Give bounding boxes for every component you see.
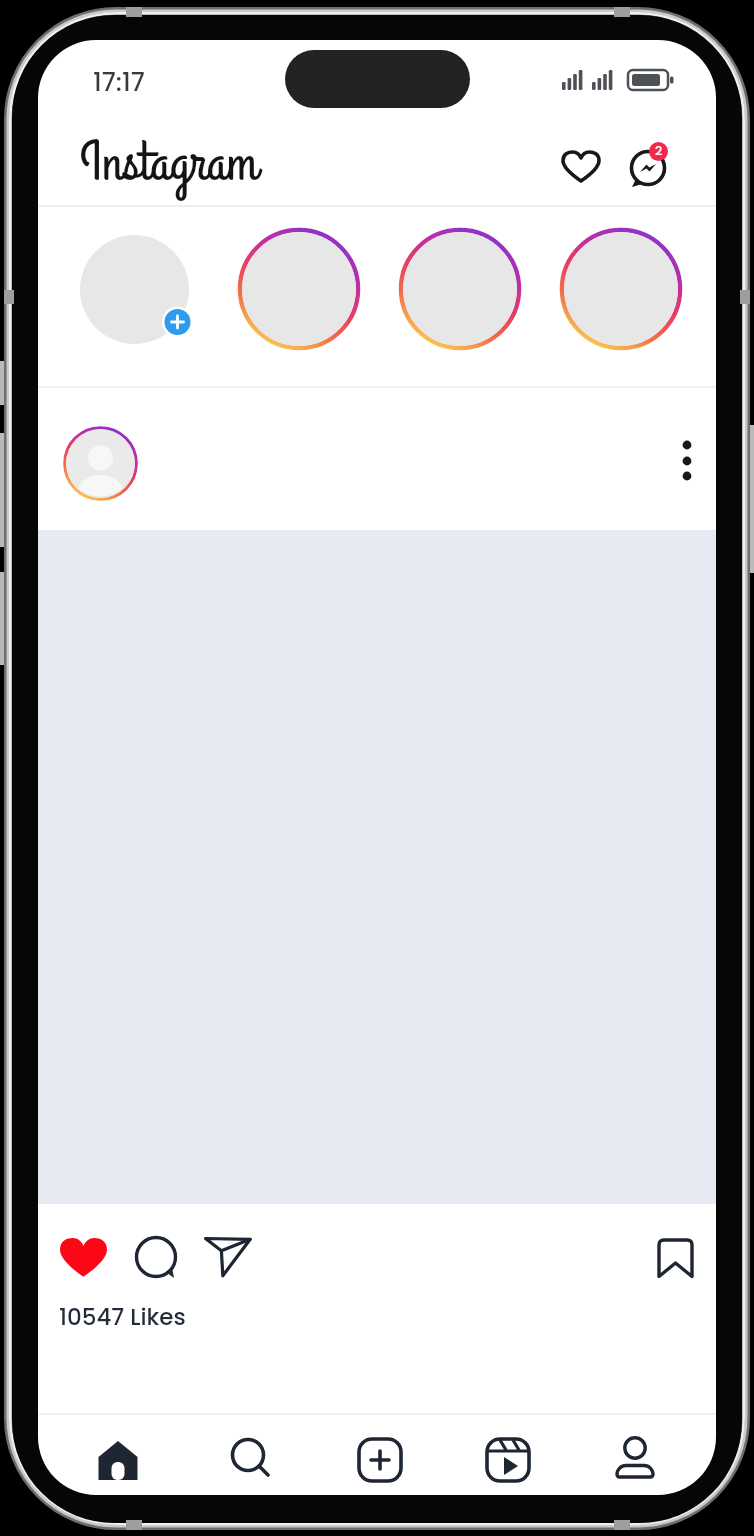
button[interactable]	[622, 137, 678, 193]
button[interactable]	[560, 228, 682, 350]
button[interactable]	[345, 1425, 415, 1495]
staticText: 2	[655, 142, 663, 159]
button[interactable]	[473, 1425, 543, 1495]
button[interactable]	[63, 426, 138, 501]
button[interactable]	[399, 228, 521, 350]
button[interactable]	[217, 1425, 287, 1495]
staticText: Instagram	[80, 125, 258, 201]
button[interactable]	[128, 1229, 184, 1285]
button[interactable]	[600, 1425, 670, 1495]
button[interactable]	[238, 228, 360, 350]
button[interactable]	[667, 430, 707, 492]
button[interactable]	[80, 235, 190, 345]
staticText: 17:17	[93, 65, 145, 100]
button[interactable]	[52, 1229, 114, 1291]
button[interactable]	[198, 1230, 258, 1290]
button[interactable]	[555, 142, 607, 194]
button[interactable]	[83, 1425, 153, 1495]
button[interactable]	[651, 1232, 701, 1282]
staticText: 10547 Likes	[59, 1301, 186, 1333]
